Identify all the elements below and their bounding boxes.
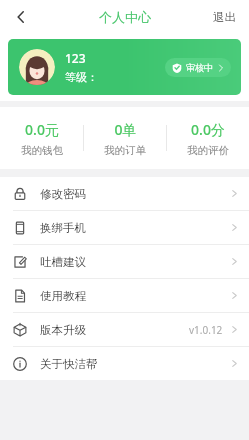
button[interactable]: 关于快洁帮 xyxy=(0,347,249,380)
button[interactable]: 退出 xyxy=(200,0,249,33)
staticText: 审核中 xyxy=(186,62,213,73)
button[interactable]: 123 xyxy=(8,39,241,95)
button[interactable]: 吐槽建议 xyxy=(0,245,249,278)
staticText: 我的评价 xyxy=(187,144,229,157)
button[interactable]: 审核中 xyxy=(165,58,231,77)
staticText: 0.0元 xyxy=(25,120,59,139)
staticText: 使用教程 xyxy=(40,289,86,303)
staticText: 版本升级 xyxy=(40,323,86,337)
button[interactable]: 0.0元 xyxy=(0,107,83,169)
staticText: 0单 xyxy=(114,120,137,139)
staticText: 等级： xyxy=(65,70,98,84)
button[interactable]: 使用教程 xyxy=(0,279,249,312)
staticText: v1.0.12 xyxy=(189,323,223,337)
button[interactable]: 修改密码 xyxy=(0,177,249,210)
button[interactable]: 0单 xyxy=(84,107,166,169)
staticText: 退出 xyxy=(213,10,236,24)
staticText: 修改密码 xyxy=(40,187,86,201)
button[interactable]: 版本升级 xyxy=(0,313,249,346)
staticText: 123 xyxy=(65,50,86,66)
staticText: 个人中心 xyxy=(99,9,151,25)
button[interactable]: Back xyxy=(0,0,42,33)
staticText: 我的钱包 xyxy=(21,144,63,157)
button[interactable]: 0.0分 xyxy=(167,107,249,169)
staticText: 关于快洁帮 xyxy=(40,357,98,371)
staticText: 我的订单 xyxy=(104,144,146,157)
staticText: 换绑手机 xyxy=(40,221,86,235)
staticText: 吐槽建议 xyxy=(40,255,86,269)
staticText: 0.0分 xyxy=(191,120,225,139)
button[interactable]: 换绑手机 xyxy=(0,211,249,244)
